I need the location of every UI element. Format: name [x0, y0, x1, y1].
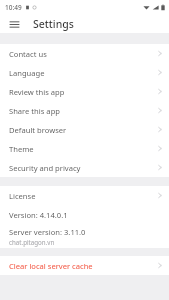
button[interactable]: Open navigation menu [6, 16, 22, 32]
button[interactable]: Contact us [0, 44, 169, 63]
staticText: 10:49 [5, 3, 22, 12]
staticText: Settings [33, 17, 74, 31]
button[interactable]: Review this app [0, 82, 169, 101]
button[interactable]: Default browser [0, 120, 169, 139]
button[interactable]: License [0, 186, 169, 205]
staticText: chat.pitagon.vn [9, 238, 55, 246]
button[interactable]: Share this app [0, 101, 169, 120]
button[interactable]: Security and privacy [0, 158, 169, 177]
staticText: Theme [9, 144, 158, 154]
staticText: Language [9, 68, 158, 78]
staticText: Review this app [9, 87, 158, 97]
staticText: License [9, 191, 158, 201]
button[interactable]: Clear local server cache [0, 256, 169, 275]
staticText: Share this app [9, 106, 158, 116]
button[interactable]: Theme [0, 139, 169, 158]
staticText: Server version: 3.11.0 [9, 227, 86, 237]
staticText: Security and privacy [9, 163, 158, 173]
staticText: Version: 4.14.0.1 [9, 210, 68, 220]
staticText: Contact us [9, 49, 158, 59]
button[interactable]: Language [0, 63, 169, 82]
staticText: Default browser [9, 125, 158, 135]
staticText: Clear local server cache [9, 261, 158, 271]
